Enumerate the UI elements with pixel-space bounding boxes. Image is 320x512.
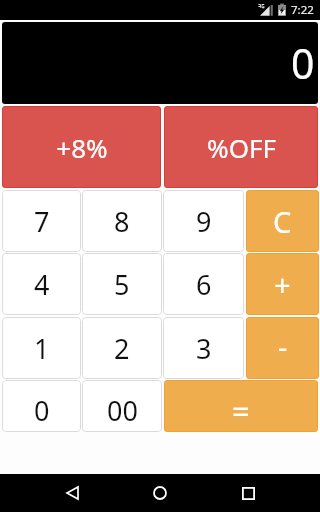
staticText: 5: [114, 266, 130, 303]
button[interactable]: 1: [2, 317, 81, 379]
staticText: +: [274, 265, 291, 304]
staticText: 2: [114, 330, 130, 367]
staticText: 6: [196, 266, 212, 303]
button[interactable]: 7: [2, 190, 81, 252]
staticText: 8: [114, 203, 130, 240]
staticText: 00: [107, 392, 138, 429]
button[interactable]: %OFF: [164, 106, 318, 188]
staticText: C: [273, 202, 292, 241]
staticText: 0: [291, 35, 315, 91]
staticText: %OFF: [207, 130, 276, 165]
button[interactable]: =: [164, 380, 318, 432]
staticText: 9: [196, 203, 212, 240]
button[interactable]: Home: [136, 474, 184, 512]
button[interactable]: 9: [163, 190, 244, 252]
staticText: 3: [196, 330, 212, 367]
button[interactable]: 0: [2, 380, 81, 432]
button[interactable]: +8%: [2, 106, 161, 188]
button[interactable]: Back: [48, 474, 96, 512]
button[interactable]: 2: [82, 317, 162, 379]
button[interactable]: Recents: [224, 474, 272, 512]
button[interactable]: 4: [2, 253, 81, 315]
button[interactable]: 6: [163, 253, 244, 315]
staticText: 7: [34, 203, 50, 240]
staticText: =: [232, 390, 250, 432]
staticText: 4: [34, 266, 50, 303]
staticText: -: [278, 327, 288, 366]
button[interactable]: -: [246, 317, 319, 379]
staticText: 0: [34, 392, 50, 429]
staticText: 7:22: [291, 2, 314, 18]
button[interactable]: 00: [82, 380, 162, 432]
button[interactable]: +: [246, 253, 319, 315]
staticText: +8%: [56, 130, 108, 165]
staticText: 1: [34, 330, 50, 367]
button[interactable]: 5: [82, 253, 162, 315]
button[interactable]: Result display: [2, 22, 318, 104]
button[interactable]: C: [246, 190, 319, 252]
button[interactable]: 8: [82, 190, 162, 252]
button[interactable]: 3: [163, 317, 244, 379]
